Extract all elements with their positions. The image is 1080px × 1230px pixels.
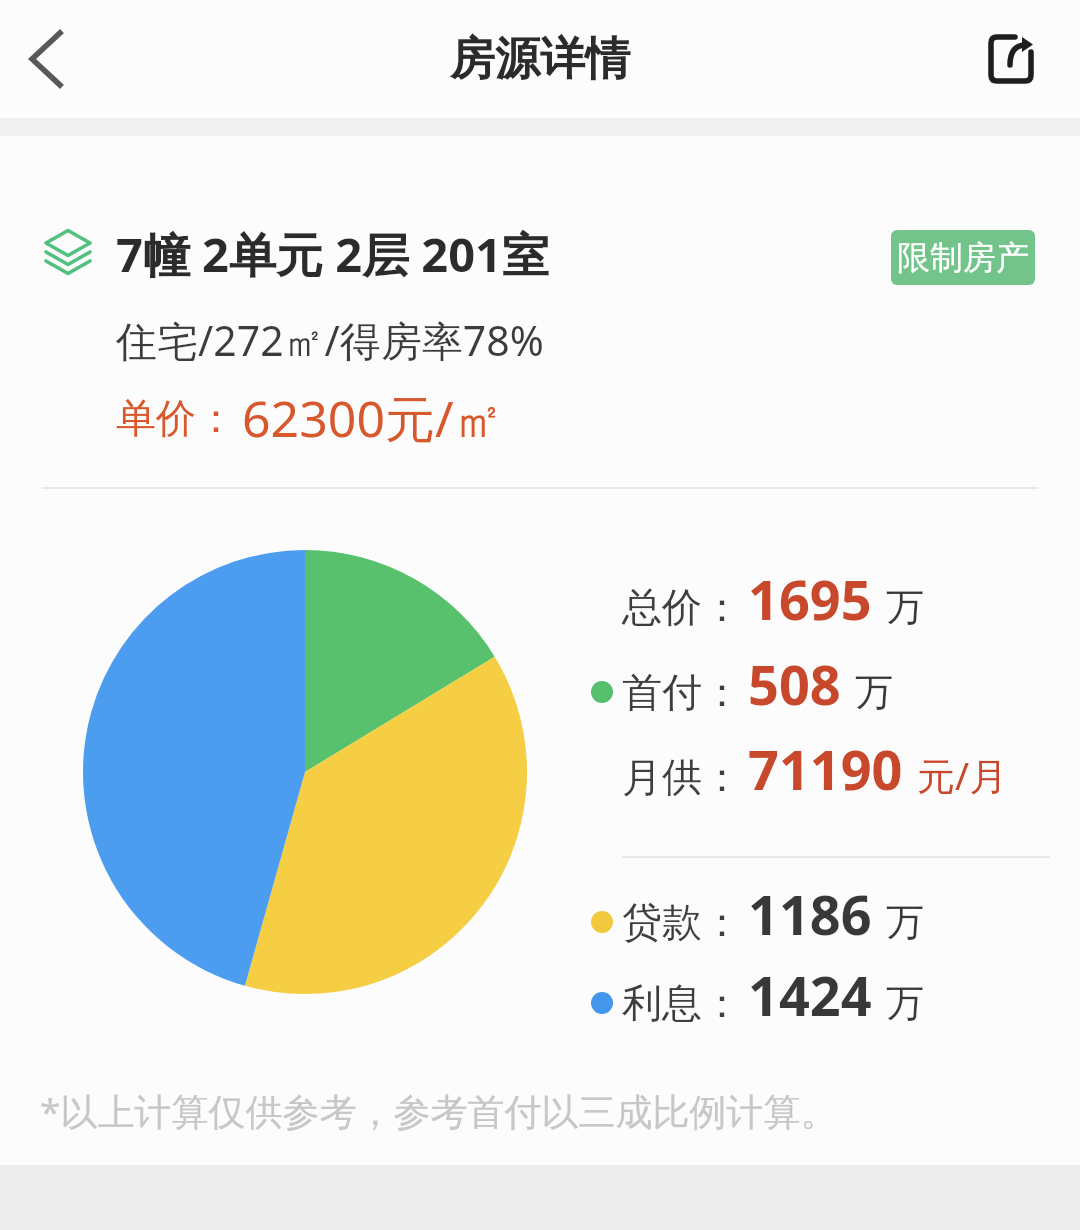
staticText: 7幢 2单元 2层 201室 <box>116 222 549 286</box>
staticText: *以上计算仅供参考，参考首付以三成比例计算。 <box>40 1085 838 1136</box>
staticText: 508 <box>748 647 841 721</box>
staticText: 贷款： <box>622 897 742 947</box>
staticText: 住宅/272㎡/得房率78% <box>116 312 544 368</box>
staticText: 62300元/㎡ <box>242 384 504 452</box>
button[interactable] <box>8 12 84 106</box>
staticText: 万 <box>886 979 924 1027</box>
staticText: 首付： <box>622 667 742 717</box>
staticText: 1186 <box>748 877 872 951</box>
staticText: 1424 <box>748 958 872 1032</box>
button[interactable] <box>975 16 1047 102</box>
staticText: 房源详情 <box>450 31 630 88</box>
staticText: 万 <box>886 898 924 946</box>
staticText: 万 <box>855 668 893 716</box>
staticText: 1695 <box>748 562 872 636</box>
staticText: 总价： <box>622 582 742 632</box>
staticText: 限制房产 <box>897 237 1029 279</box>
button[interactable]: 限制房产 <box>891 230 1035 285</box>
staticText: 利息： <box>622 978 742 1028</box>
staticText: 元/月 <box>917 749 1008 801</box>
staticText: 万 <box>886 583 924 631</box>
staticText: 月供： <box>622 752 742 802</box>
staticText: 单价： <box>116 393 236 443</box>
staticText: 71190 <box>748 732 903 806</box>
